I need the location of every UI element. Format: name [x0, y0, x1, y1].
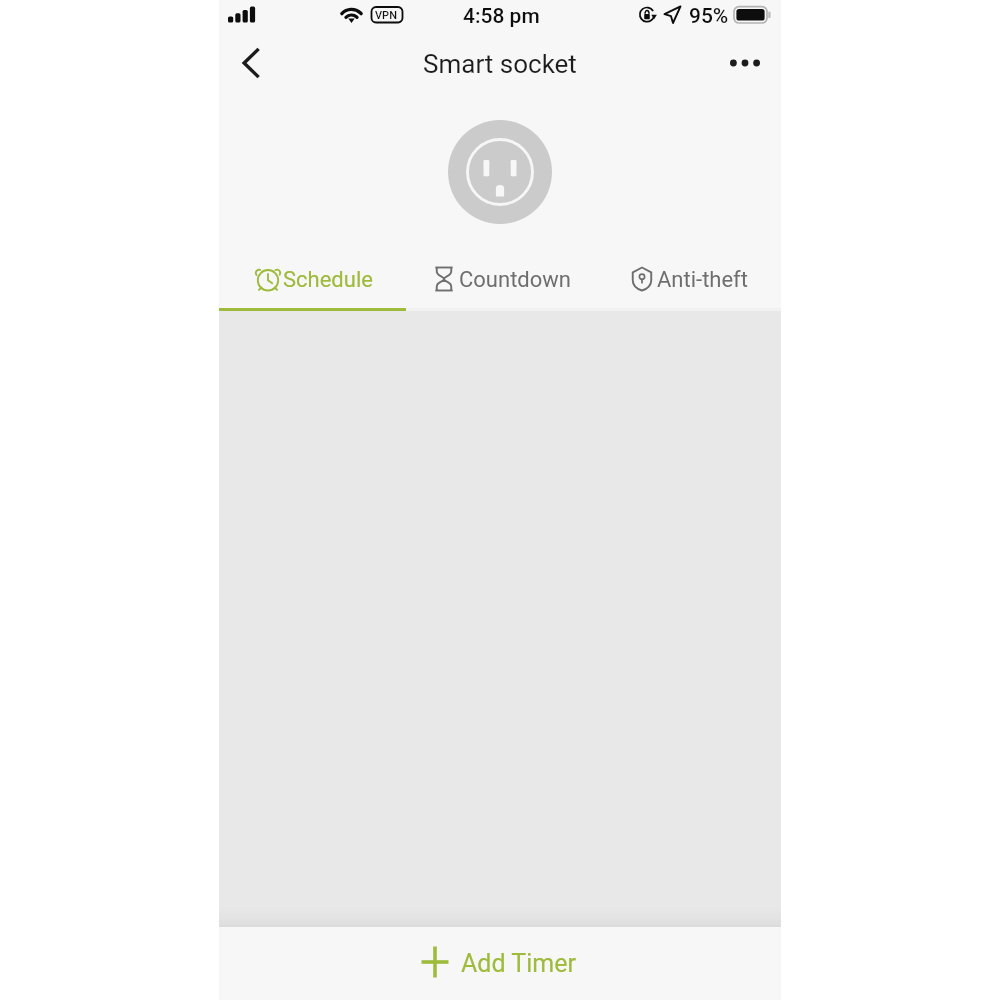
- staticText: Anti-theft: [657, 267, 748, 293]
- staticText: Schedule: [283, 267, 373, 293]
- button[interactable]: Add Timer: [216, 927, 778, 1000]
- staticText: VPN: [375, 9, 397, 22]
- staticText: Smart socket: [423, 49, 577, 79]
- staticText: 95%: [689, 4, 729, 29]
- staticText: Countdown: [459, 267, 571, 293]
- button[interactable]: Countdown: [407, 250, 594, 308]
- button[interactable]: More options: [717, 35, 773, 91]
- button[interactable]: Anti-theft: [594, 250, 781, 308]
- staticText: Add Timer: [461, 949, 576, 978]
- button[interactable]: Back: [223, 35, 279, 91]
- button[interactable]: Schedule: [219, 250, 407, 308]
- staticText: 4:58 pm: [463, 4, 540, 29]
